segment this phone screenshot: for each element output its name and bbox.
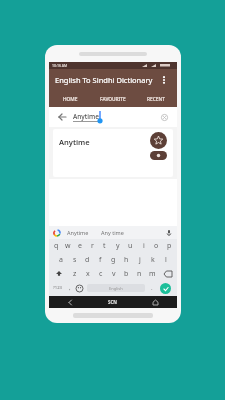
button[interactable]: Back [56, 111, 68, 123]
staticText: a [59, 255, 63, 265]
button[interactable]: Enter [156, 281, 175, 295]
staticText: b [124, 269, 129, 279]
button[interactable]: More options [157, 73, 171, 87]
button[interactable]: Speak [150, 151, 167, 160]
button[interactable]: e [74, 239, 86, 253]
button[interactable]: u [124, 239, 137, 253]
staticText: k [151, 255, 155, 265]
staticText: 10:16 AM [52, 63, 68, 68]
button[interactable]: l [159, 253, 172, 267]
staticText: English To Sindhi Dictionary [55, 75, 153, 85]
button[interactable]: s [68, 253, 81, 267]
staticText: z [73, 269, 77, 279]
staticText: SCN [108, 299, 118, 305]
staticText: n [137, 269, 142, 279]
button[interactable]: English [87, 284, 145, 292]
button[interactable]: y [111, 239, 124, 253]
staticText: ?123 [53, 285, 63, 291]
button[interactable]: r [86, 239, 98, 253]
staticText: w [65, 241, 71, 251]
button[interactable]: t [98, 239, 111, 253]
staticText: RECENT [147, 96, 165, 103]
staticText: x [86, 269, 90, 279]
button[interactable]: Clear search [158, 111, 170, 123]
button[interactable]: k [146, 253, 159, 267]
staticText: y [116, 241, 120, 251]
button[interactable]: b [120, 267, 133, 281]
staticText: j [139, 255, 141, 265]
button[interactable]: x [81, 267, 94, 281]
button[interactable]: Voice input [164, 228, 173, 237]
staticText: Any time [101, 229, 124, 236]
button[interactable]: z [68, 267, 81, 281]
button[interactable]: d [81, 253, 94, 267]
button[interactable]: Anytime [67, 229, 89, 236]
staticText: o [154, 241, 159, 251]
button[interactable]: g [107, 253, 120, 267]
staticText: English [109, 286, 123, 291]
staticText: i [143, 241, 145, 251]
staticText: . [151, 284, 153, 292]
button[interactable]: Emoji [74, 281, 85, 295]
button[interactable]: h [120, 253, 133, 267]
button[interactable]: Comma [65, 281, 74, 295]
button[interactable]: Anytime [53, 129, 173, 177]
staticText: HOME [63, 96, 78, 103]
staticText: h [124, 255, 129, 265]
button[interactable]: Any time [101, 229, 124, 236]
staticText: g [111, 255, 116, 265]
staticText: FAVOURITE [100, 96, 126, 103]
button[interactable]: Recents [91, 296, 134, 308]
staticText: Anytime [67, 229, 89, 236]
staticText: d [85, 255, 90, 265]
staticText: r [91, 241, 94, 251]
button[interactable]: Google [53, 229, 61, 237]
staticText: t [103, 241, 106, 251]
button[interactable]: o [150, 239, 163, 253]
staticText: p [167, 241, 172, 251]
staticText: m [149, 269, 156, 279]
staticText: v [112, 269, 116, 279]
staticText: l [165, 255, 167, 265]
button[interactable]: f [94, 253, 107, 267]
button[interactable]: w [62, 239, 74, 253]
button[interactable]: Home [134, 296, 177, 308]
button[interactable]: RECENT [134, 91, 177, 107]
button[interactable]: HOME [49, 91, 91, 107]
button[interactable]: n [133, 267, 146, 281]
button[interactable]: Back [49, 296, 91, 308]
staticText: c [99, 269, 103, 279]
staticText: Anytime [73, 112, 99, 121]
staticText: Anytime [59, 137, 90, 147]
button[interactable]: p [163, 239, 176, 253]
button[interactable]: Favourite [150, 132, 167, 149]
staticText: s [73, 255, 77, 265]
button[interactable]: i [137, 239, 150, 253]
button[interactable]: q [50, 239, 62, 253]
button[interactable]: ?123 [51, 281, 65, 295]
button[interactable]: v [107, 267, 120, 281]
button[interactable]: j [133, 253, 146, 267]
button[interactable]: m [146, 267, 159, 281]
staticText: , [69, 284, 71, 292]
button[interactable]: a [54, 253, 68, 267]
staticText: e [78, 241, 82, 251]
staticText: u [128, 241, 133, 251]
staticText: f [99, 255, 102, 265]
button[interactable]: FAVOURITE [91, 91, 134, 107]
button[interactable]: c [94, 267, 107, 281]
button[interactable]: Shift [50, 267, 68, 281]
button[interactable]: Period [147, 281, 156, 295]
button[interactable]: Backspace [159, 267, 176, 281]
staticText: q [54, 241, 59, 251]
